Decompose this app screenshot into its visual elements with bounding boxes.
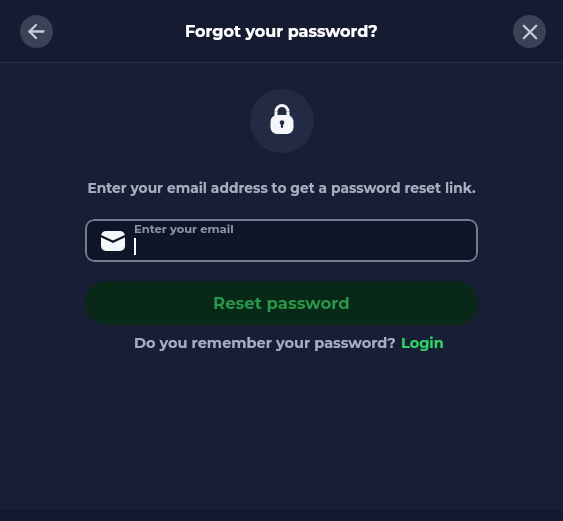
staticText: Do you remember your password? bbox=[134, 334, 401, 352]
button[interactable]: Login bbox=[401, 334, 444, 352]
button[interactable]: Reset password bbox=[85, 281, 478, 325]
staticText: Enter your email address to get a passwo… bbox=[0, 180, 563, 197]
staticText: Reset password bbox=[213, 293, 350, 313]
button[interactable]: Enter your email bbox=[85, 219, 478, 262]
staticText: Login bbox=[401, 334, 444, 352]
staticText: Enter your email bbox=[134, 222, 234, 236]
button[interactable] bbox=[20, 15, 53, 48]
staticText: Forgot your password? bbox=[185, 22, 378, 42]
button[interactable] bbox=[513, 15, 546, 48]
